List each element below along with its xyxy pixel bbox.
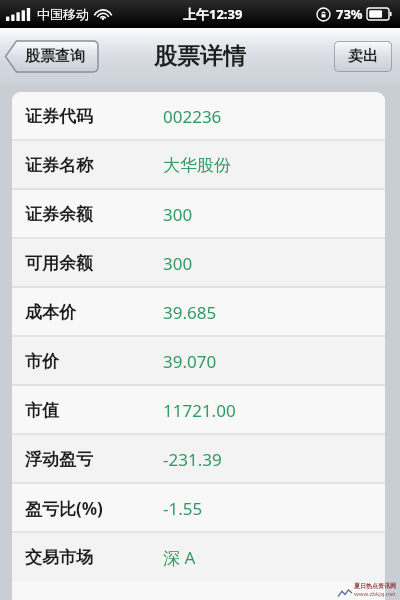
button[interactable]: 证券余额 xyxy=(12,190,385,239)
staticText: 300 xyxy=(163,203,193,226)
staticText: 大华股份 xyxy=(163,155,231,176)
staticText: 39.070 xyxy=(163,350,217,373)
staticText: 证券名称 xyxy=(25,155,93,176)
staticText: -1.55 xyxy=(163,497,203,520)
staticText: 11721.00 xyxy=(163,399,236,422)
staticText: 卖出 xyxy=(348,47,378,66)
staticText: 股票查询 xyxy=(25,47,85,66)
staticText: 证券余额 xyxy=(25,204,93,225)
staticText: 成本价 xyxy=(25,302,76,323)
staticText: 交易市场 xyxy=(25,547,93,568)
button[interactable]: 市值 xyxy=(12,386,385,435)
staticText: 深 A xyxy=(163,546,196,569)
button[interactable]: 证券代码 xyxy=(12,92,385,141)
button[interactable]: 股票查询 xyxy=(4,41,98,72)
staticText: 73% xyxy=(336,5,363,23)
staticText: 市值 xyxy=(25,400,59,421)
staticText: 夏日热点资讯网 xyxy=(354,582,396,590)
button[interactable]: 卖出 xyxy=(334,41,392,72)
staticText: -231.39 xyxy=(163,448,222,471)
staticText: 300 xyxy=(163,252,193,275)
button[interactable]: 交易市场 xyxy=(12,533,385,582)
button[interactable]: 证券名称 xyxy=(12,141,385,190)
button[interactable]: 浮动盈亏 xyxy=(12,435,385,484)
button[interactable]: 可用余额 xyxy=(12,239,385,288)
staticText: 证券代码 xyxy=(25,106,93,127)
staticText: 盈亏比(%) xyxy=(25,497,103,520)
button[interactable]: 成本价 xyxy=(12,288,385,337)
staticText: 浮动盈亏 xyxy=(25,449,93,470)
staticText: 股票详情 xyxy=(154,42,246,71)
staticText: www.zbkjq.net xyxy=(354,590,396,598)
staticText: 中国移动 xyxy=(37,6,89,22)
staticText: 上午12:39 xyxy=(183,5,243,23)
staticText: 可用余额 xyxy=(25,253,93,274)
button[interactable]: 市价 xyxy=(12,337,385,386)
staticText: 002236 xyxy=(163,105,222,128)
button[interactable]: 盈亏比(%) xyxy=(12,484,385,533)
staticText: 市价 xyxy=(25,351,59,372)
staticText: 39.685 xyxy=(163,301,217,324)
